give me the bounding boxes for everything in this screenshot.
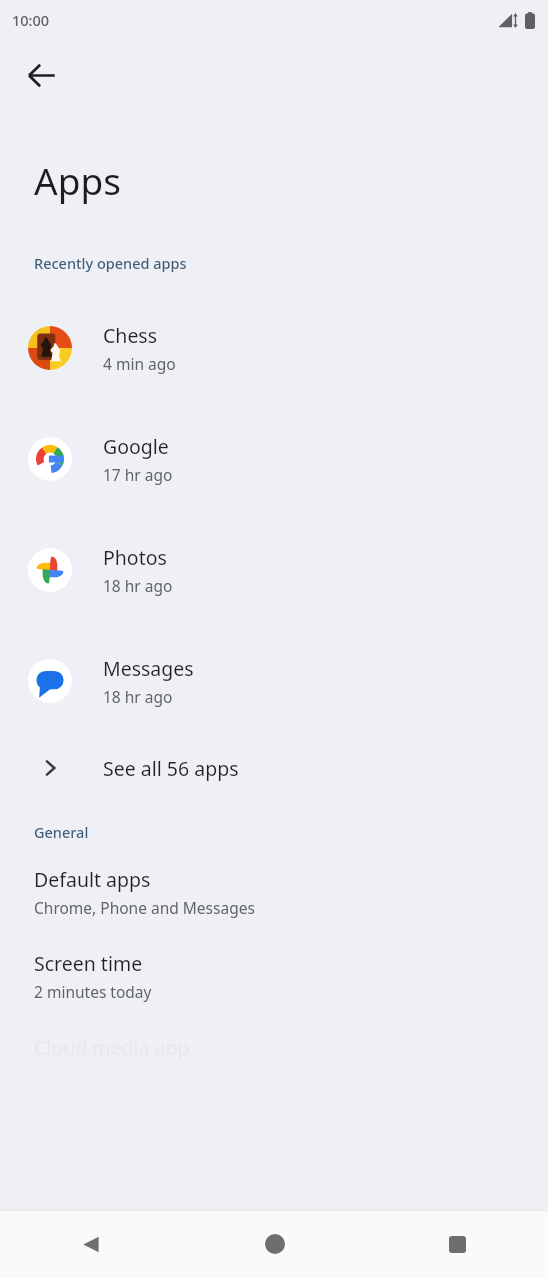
staticText: Recently opened apps — [34, 253, 187, 273]
button[interactable]: Recent apps — [366, 1210, 548, 1278]
staticText: 17 hr ago — [103, 464, 173, 485]
staticText: 4 min ago — [103, 353, 176, 374]
button[interactable]: Back — [0, 1210, 183, 1278]
button[interactable]: Back — [13, 47, 69, 103]
button[interactable]: Screen time — [0, 950, 548, 1002]
button[interactable]: Google — [0, 403, 548, 514]
staticText: Chess — [103, 322, 158, 349]
staticText: 18 hr ago — [103, 686, 173, 707]
staticText: 10:00 — [12, 10, 50, 30]
staticText: Google — [103, 433, 169, 460]
staticText: Chrome, Phone and Messages — [34, 897, 255, 918]
button[interactable]: Chess — [0, 292, 548, 403]
staticText: 2 minutes today — [34, 981, 152, 1002]
staticText: Screen time — [34, 950, 143, 977]
staticText: General — [34, 822, 89, 842]
button[interactable]: Photos — [0, 514, 548, 625]
button[interactable]: Messages — [0, 625, 548, 736]
button[interactable]: Default apps — [0, 866, 548, 918]
button[interactable]: Home — [183, 1210, 366, 1278]
staticText: 18 hr ago — [103, 575, 173, 596]
staticText: See all 56 apps — [103, 755, 239, 782]
staticText: Messages — [103, 655, 194, 682]
staticText: Apps — [34, 155, 121, 205]
staticText: Default apps — [34, 866, 151, 893]
button[interactable]: See all 56 apps — [0, 736, 548, 800]
staticText: Photos — [103, 544, 167, 571]
